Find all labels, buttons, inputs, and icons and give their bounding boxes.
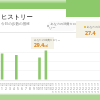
staticText: 17 <box>61 91 64 99</box>
staticText: 27 <box>91 91 94 99</box>
staticText: 12 <box>44 87 48 91</box>
staticText: 12 <box>88 83 91 91</box>
staticText: 3 <box>9 87 11 91</box>
staticText: 12 <box>76 83 79 91</box>
staticText: 12 <box>85 83 88 91</box>
staticText: 12 <box>4 83 8 87</box>
staticText: 8 <box>29 87 31 91</box>
staticText: 12 <box>91 83 94 91</box>
staticText: kcal <box>43 44 49 48</box>
staticText: 5 <box>17 87 19 91</box>
staticText: 12 <box>79 83 82 91</box>
staticText: 今日の歩数の推移 <box>1 22 30 27</box>
staticText: 7 <box>25 87 27 91</box>
staticText: 15 <box>55 91 58 99</box>
staticText: 22 <box>76 91 79 99</box>
staticText: 13 <box>48 87 52 91</box>
staticText: 12 <box>44 83 48 87</box>
staticText: 16 <box>58 91 61 99</box>
staticText: 12 <box>20 83 24 87</box>
staticText: 12 <box>58 83 61 91</box>
staticText: 2 <box>5 87 7 91</box>
staticText: 12 <box>16 83 20 87</box>
staticText: 27.4 <box>85 29 96 36</box>
staticText: 20 <box>70 91 73 99</box>
staticText: 19 <box>67 91 70 99</box>
staticText: 12 <box>55 83 58 91</box>
staticText: 18 <box>64 91 67 99</box>
staticText: 9 <box>33 87 35 91</box>
staticText: あなたの消費カロリー <box>34 38 61 41</box>
staticText: 12 <box>28 83 32 87</box>
staticText: 12 <box>12 83 16 87</box>
staticText: 25 <box>85 91 88 99</box>
staticText: 12 <box>94 83 97 91</box>
staticText: 12 <box>82 83 85 91</box>
staticText: 26 <box>88 91 91 99</box>
staticText: 12 <box>61 83 64 91</box>
staticText: 12 <box>64 83 67 91</box>
staticText: 29 <box>97 91 100 99</box>
staticText: 12 <box>24 83 28 87</box>
staticText: あなたの消費 <box>86 25 100 29</box>
staticText: 28 <box>94 91 97 99</box>
staticText: 12 <box>97 83 100 91</box>
staticText: 14 <box>52 91 55 99</box>
staticText: 12 <box>40 83 44 87</box>
staticText: 12 <box>67 83 70 91</box>
staticText: 12 <box>48 83 52 87</box>
staticText: 29.4 <box>34 42 44 49</box>
staticText: 12 <box>8 83 12 87</box>
staticText: 24 <box>82 91 85 99</box>
staticText: 12 <box>36 83 40 87</box>
button[interactable]: あなたの消費カロリー <box>47 21 77 31</box>
staticText: 12 <box>52 83 55 91</box>
staticText: 21 <box>73 91 76 99</box>
staticText: 12 <box>70 83 73 91</box>
staticText: 10 <box>36 87 40 91</box>
staticText: あなたの消費カロリー <box>49 22 77 30</box>
staticText: 11 <box>40 87 44 91</box>
staticText: 6 <box>21 87 23 91</box>
staticText: 4 <box>13 87 15 91</box>
staticText: 12 <box>73 83 76 91</box>
staticText: ヒストリー <box>1 13 33 21</box>
staticText: 12 <box>0 83 4 87</box>
staticText: 23 <box>79 91 82 99</box>
staticText: 1 <box>1 87 3 91</box>
staticText: 12 <box>32 83 36 87</box>
